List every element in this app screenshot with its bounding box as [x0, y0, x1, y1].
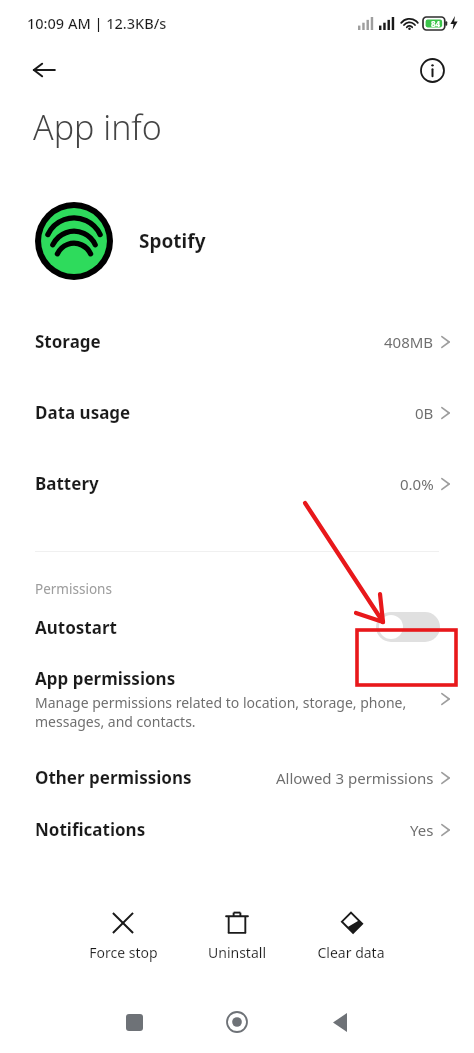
staticText: Manage permissions related to location, …: [35, 693, 431, 731]
staticText: 0B: [415, 403, 434, 423]
button[interactable]: Autostart: [0, 598, 474, 656]
staticText: Notifications: [35, 818, 146, 841]
button[interactable]: Autostart toggle, off: [376, 612, 440, 642]
button[interactable]: App details: [412, 50, 452, 90]
button[interactable]: Notifications: [0, 827, 474, 853]
button[interactable]: Clear data: [308, 906, 394, 966]
button[interactable]: Force stop: [80, 906, 166, 966]
button[interactable]: Data usage: [0, 377, 474, 448]
button[interactable]: Battery: [0, 448, 474, 519]
staticText: Battery: [35, 472, 99, 495]
button[interactable]: Home: [215, 1000, 259, 1044]
button[interactable]: Recents: [112, 1000, 156, 1044]
staticText: Autostart: [35, 616, 117, 639]
staticText: 408MB: [384, 332, 434, 352]
staticText: Force stop: [89, 943, 158, 962]
staticText: Allowed 3 permissions: [276, 768, 434, 788]
staticText: 84: [431, 18, 441, 29]
staticText: Other permissions: [35, 766, 192, 789]
staticText: Spotify: [139, 228, 206, 254]
staticText: Uninstall: [208, 943, 266, 962]
staticText: Yes: [410, 820, 434, 840]
button[interactable]: Storage: [0, 306, 474, 377]
staticText: Data usage: [35, 401, 131, 424]
staticText: 0.0%: [400, 474, 434, 494]
button[interactable]: Other permissions: [0, 742, 474, 813]
staticText: App permissions: [35, 667, 176, 690]
button[interactable]: Back: [318, 1000, 362, 1044]
staticText: Storage: [35, 330, 101, 353]
staticText: Clear data: [317, 943, 385, 962]
button[interactable]: Uninstall: [194, 906, 280, 966]
button[interactable]: Back: [22, 48, 66, 92]
button[interactable]: App permissions: [0, 656, 474, 742]
staticText: App info: [33, 104, 162, 150]
staticText: 10:09 AM | 12.3KB/s: [27, 13, 167, 33]
staticText: Permissions: [35, 580, 112, 598]
